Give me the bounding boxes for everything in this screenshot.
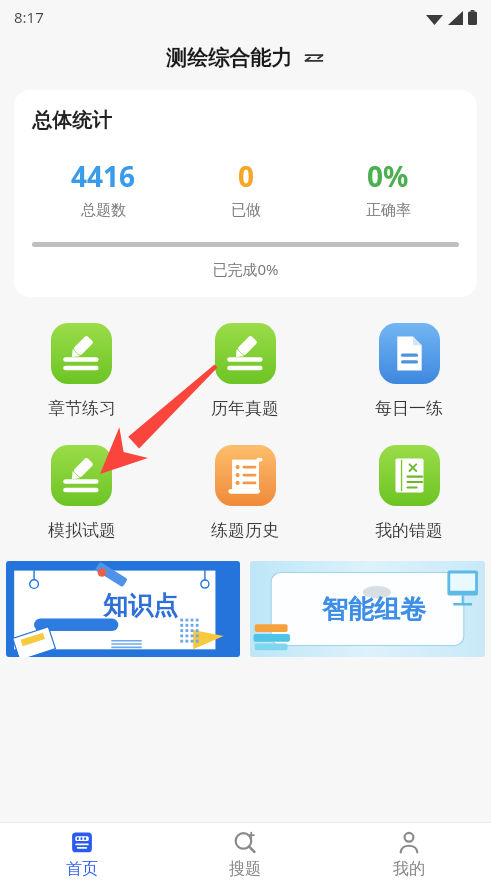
button[interactable]: 搜题 [163, 823, 327, 885]
staticText: 已做 [231, 201, 261, 220]
button[interactable]: 切换科目 [302, 46, 326, 70]
staticText: 首页 [66, 859, 98, 879]
staticText: 搜题 [229, 859, 261, 879]
staticText: 正确率 [366, 201, 411, 220]
staticText: 0% [367, 157, 409, 195]
staticText: 4416 [71, 157, 136, 195]
staticText: 已完成0% [32, 259, 459, 279]
button[interactable]: 智能组卷 [250, 561, 485, 657]
button[interactable]: 模拟试题 [0, 441, 163, 545]
button[interactable]: 章节练习 [0, 319, 163, 423]
staticText: 我的 [393, 859, 425, 879]
button[interactable]: 首页 [0, 823, 163, 885]
staticText: 模拟试题 [48, 520, 116, 541]
staticText: 测绘综合能力 [166, 45, 292, 71]
staticText: 智能组卷 [322, 593, 426, 626]
staticText: 8:17 [14, 7, 44, 27]
button[interactable]: 历年真题 [163, 319, 327, 423]
staticText: 每日一练 [375, 398, 443, 419]
staticText: 历年真题 [211, 398, 279, 419]
staticText: 总题数 [81, 201, 126, 220]
button[interactable]: 总体统计 [14, 90, 477, 297]
staticText: 总体统计 [32, 108, 112, 133]
button[interactable]: 知识点 [6, 561, 240, 657]
button[interactable]: 练题历史 [163, 441, 327, 545]
button[interactable]: 每日一练 [327, 319, 491, 423]
staticText: 练题历史 [211, 520, 279, 541]
staticText: 0 [238, 157, 255, 195]
button[interactable]: 我的错题 [327, 441, 491, 545]
staticText: 知识点 [103, 590, 178, 621]
button[interactable]: 我的 [327, 823, 491, 885]
staticText: 章节练习 [48, 398, 116, 419]
staticText: 我的错题 [375, 520, 443, 541]
